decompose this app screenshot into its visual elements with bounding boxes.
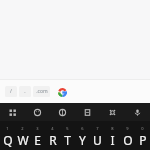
staticText: .com [36,88,48,95]
button[interactable]: 4 [45,126,60,150]
button[interactable]: Voice input [125,103,150,121]
button[interactable]: 6 [75,126,90,150]
staticText: Q [3,132,13,148]
button[interactable]: 3 [30,126,45,150]
staticText: R [49,132,57,148]
staticText: E [34,132,41,148]
button[interactable]: 9 [120,126,135,150]
staticText: I [110,132,115,148]
button[interactable]: Google search [55,85,69,99]
staticText: W [17,132,29,148]
button[interactable]: . [19,86,31,97]
button[interactable]: Stickers [0,103,25,121]
staticText: U [93,132,102,148]
staticText: 8 [111,126,114,131]
staticText: 6 [81,126,84,131]
staticText: . [24,88,26,95]
staticText: 3 [36,126,39,131]
staticText: O [123,132,133,148]
staticText: 9 [126,126,129,131]
button[interactable]: 0 [135,126,150,150]
button[interactable]: Clipboard [75,103,100,121]
staticText: 5 [66,126,69,131]
button[interactable]: 1 [0,126,15,150]
staticText: Y [79,132,86,148]
staticText: 1 [6,126,9,131]
button[interactable]: 8 [105,126,120,150]
button[interactable]: .com [33,86,50,97]
button[interactable]: 5 [60,126,75,150]
staticText: 0 [141,126,144,131]
staticText: 4 [51,126,54,131]
staticText: 2 [21,126,24,131]
button[interactable]: / [5,86,17,97]
button[interactable]: Emoji [25,103,50,121]
staticText: P [139,132,147,148]
staticText: 7 [96,126,99,131]
button[interactable]: 7 [90,126,105,150]
button[interactable]: 2 [15,126,30,150]
staticText: T [64,132,71,148]
button[interactable]: Themes [50,103,75,121]
staticText: / [10,88,12,95]
button[interactable]: Settings [100,103,125,121]
